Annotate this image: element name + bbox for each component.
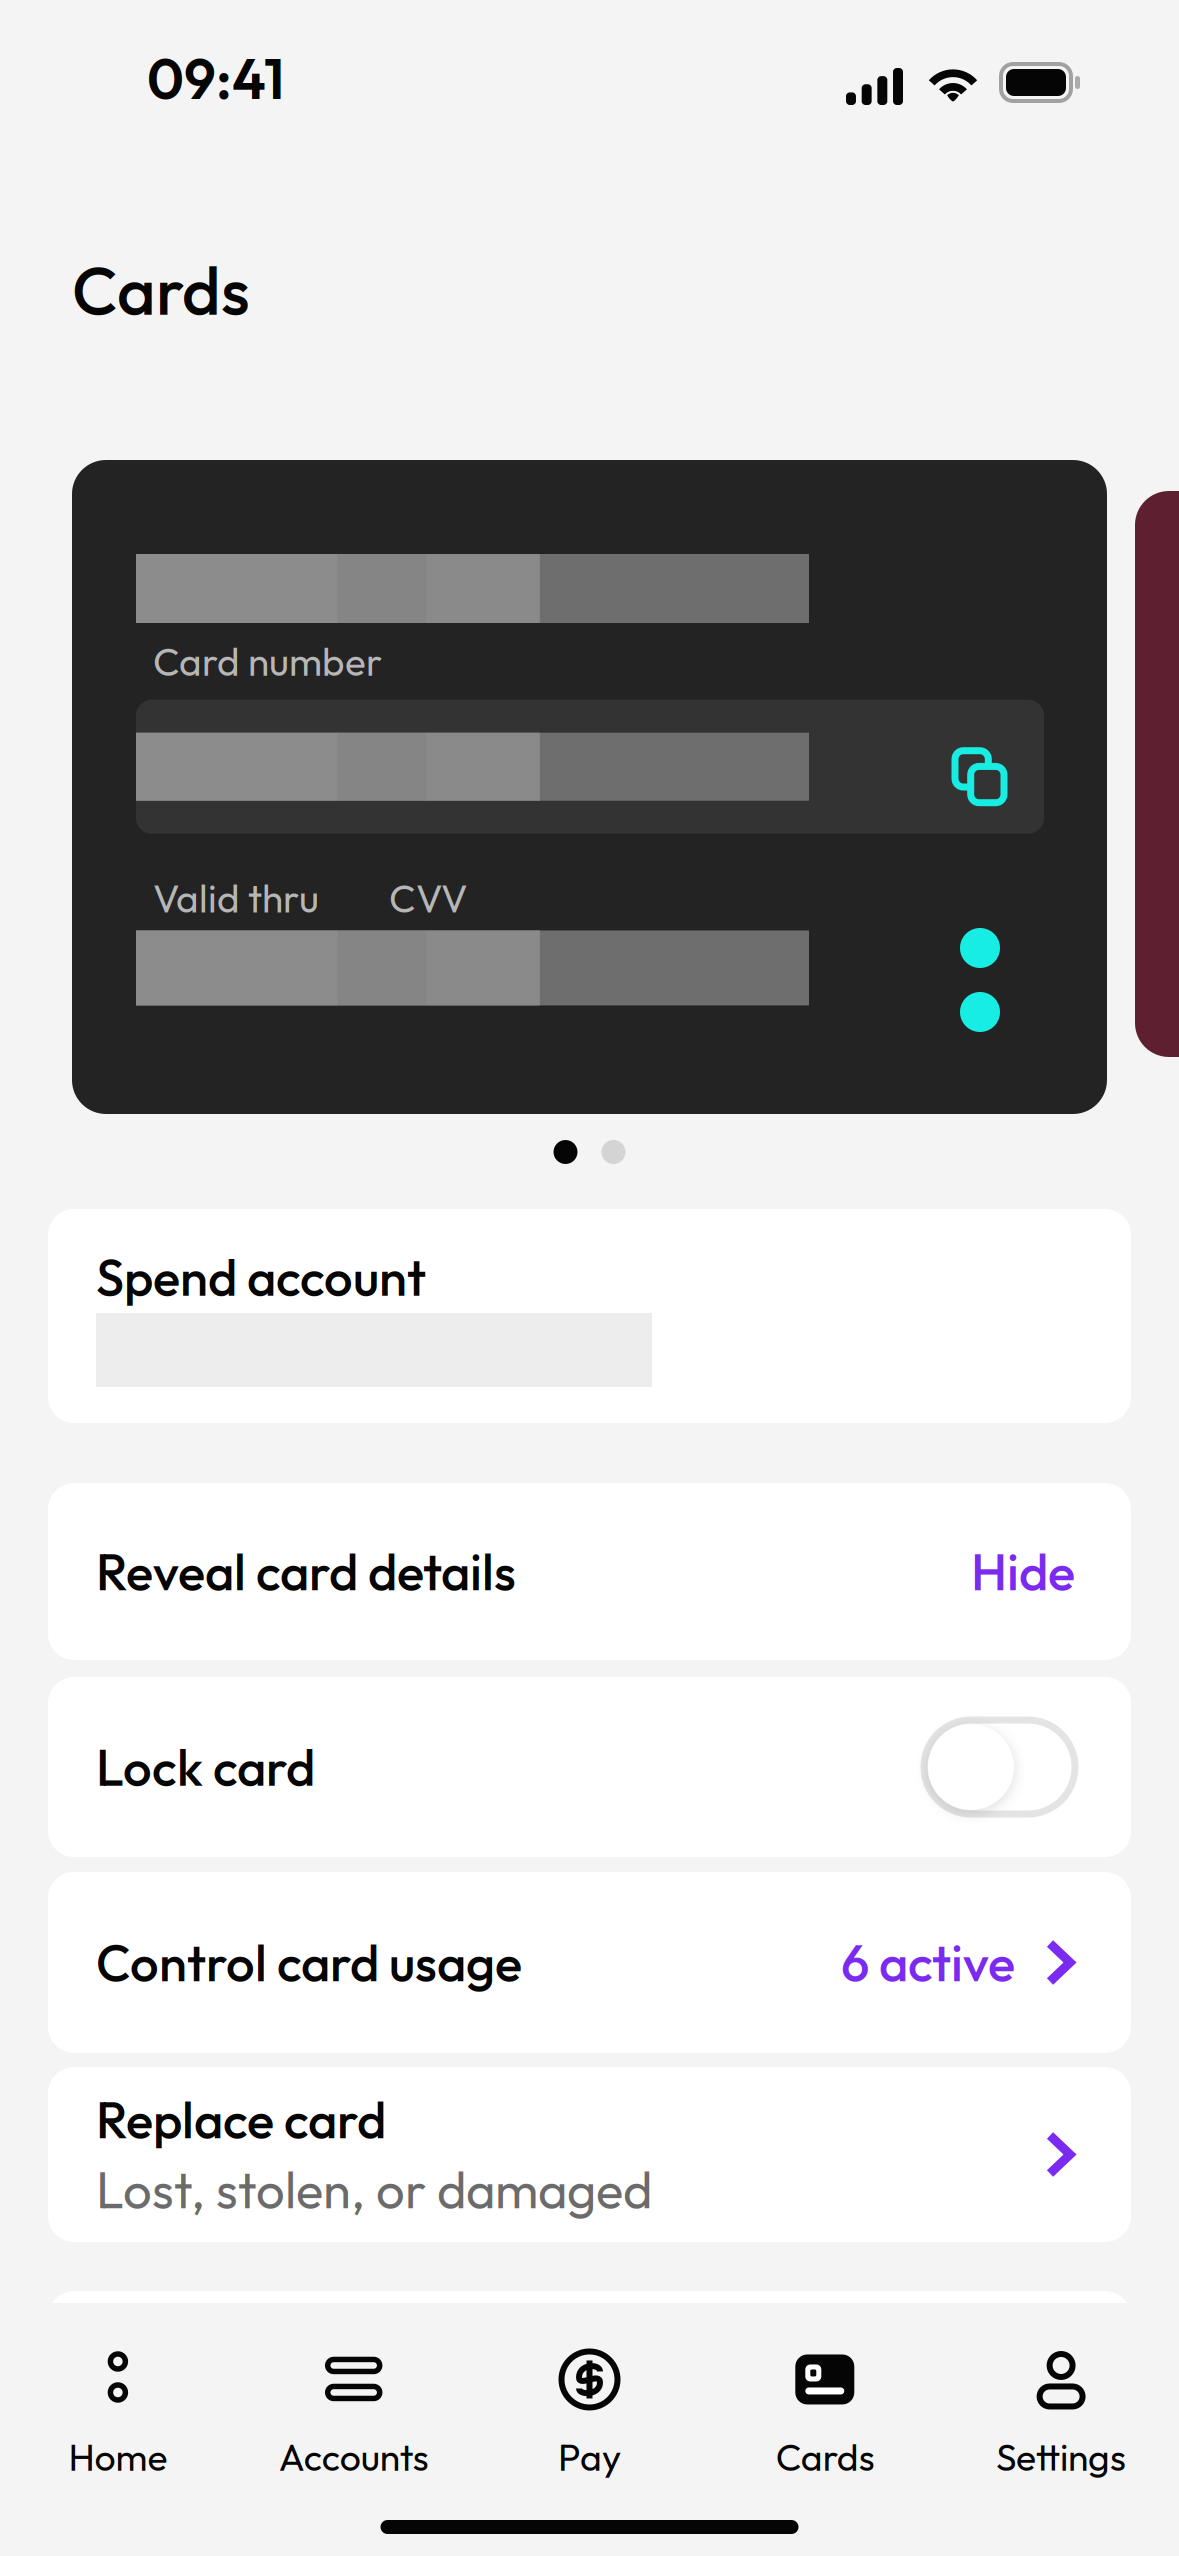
staticText: 6 active — [841, 1931, 1015, 1994]
button[interactable]: Control card usage — [48, 1872, 1131, 2053]
staticText: Lost, stolen, or damaged — [96, 2157, 652, 2221]
staticText: Card number — [153, 637, 382, 686]
staticText: Hide — [971, 1540, 1075, 1603]
staticText: Valid thru — [153, 874, 319, 922]
button[interactable]: Lock card — [48, 1677, 1131, 1857]
staticText: Pay — [558, 2433, 621, 2480]
staticText: Settings — [996, 2433, 1126, 2480]
staticText: Home — [68, 2433, 167, 2480]
staticText: Cards — [72, 248, 250, 332]
staticText: CVV — [389, 874, 468, 922]
button[interactable]: Settings — [943, 2350, 1179, 2478]
staticText: Control card usage — [96, 1931, 522, 1994]
staticText: Spend account — [96, 1245, 426, 1309]
staticText: Cards — [776, 2433, 875, 2480]
button[interactable]: Reveal card details — [48, 1483, 1131, 1660]
button[interactable]: Accounts — [236, 2350, 472, 2478]
staticText: 09:41 — [147, 43, 285, 114]
staticText: Lock card — [96, 1735, 315, 1799]
staticText: Accounts — [279, 2433, 429, 2480]
button[interactable]: Copy card number — [931, 727, 1028, 827]
button[interactable]: Cards — [707, 2350, 943, 2478]
button[interactable]: Pay — [472, 2350, 707, 2478]
button[interactable]: Replace card — [48, 2067, 1131, 2242]
staticText: Reveal card details — [96, 1540, 516, 1603]
staticText: Replace card — [96, 2088, 386, 2151]
button[interactable]: Home — [0, 2350, 236, 2478]
